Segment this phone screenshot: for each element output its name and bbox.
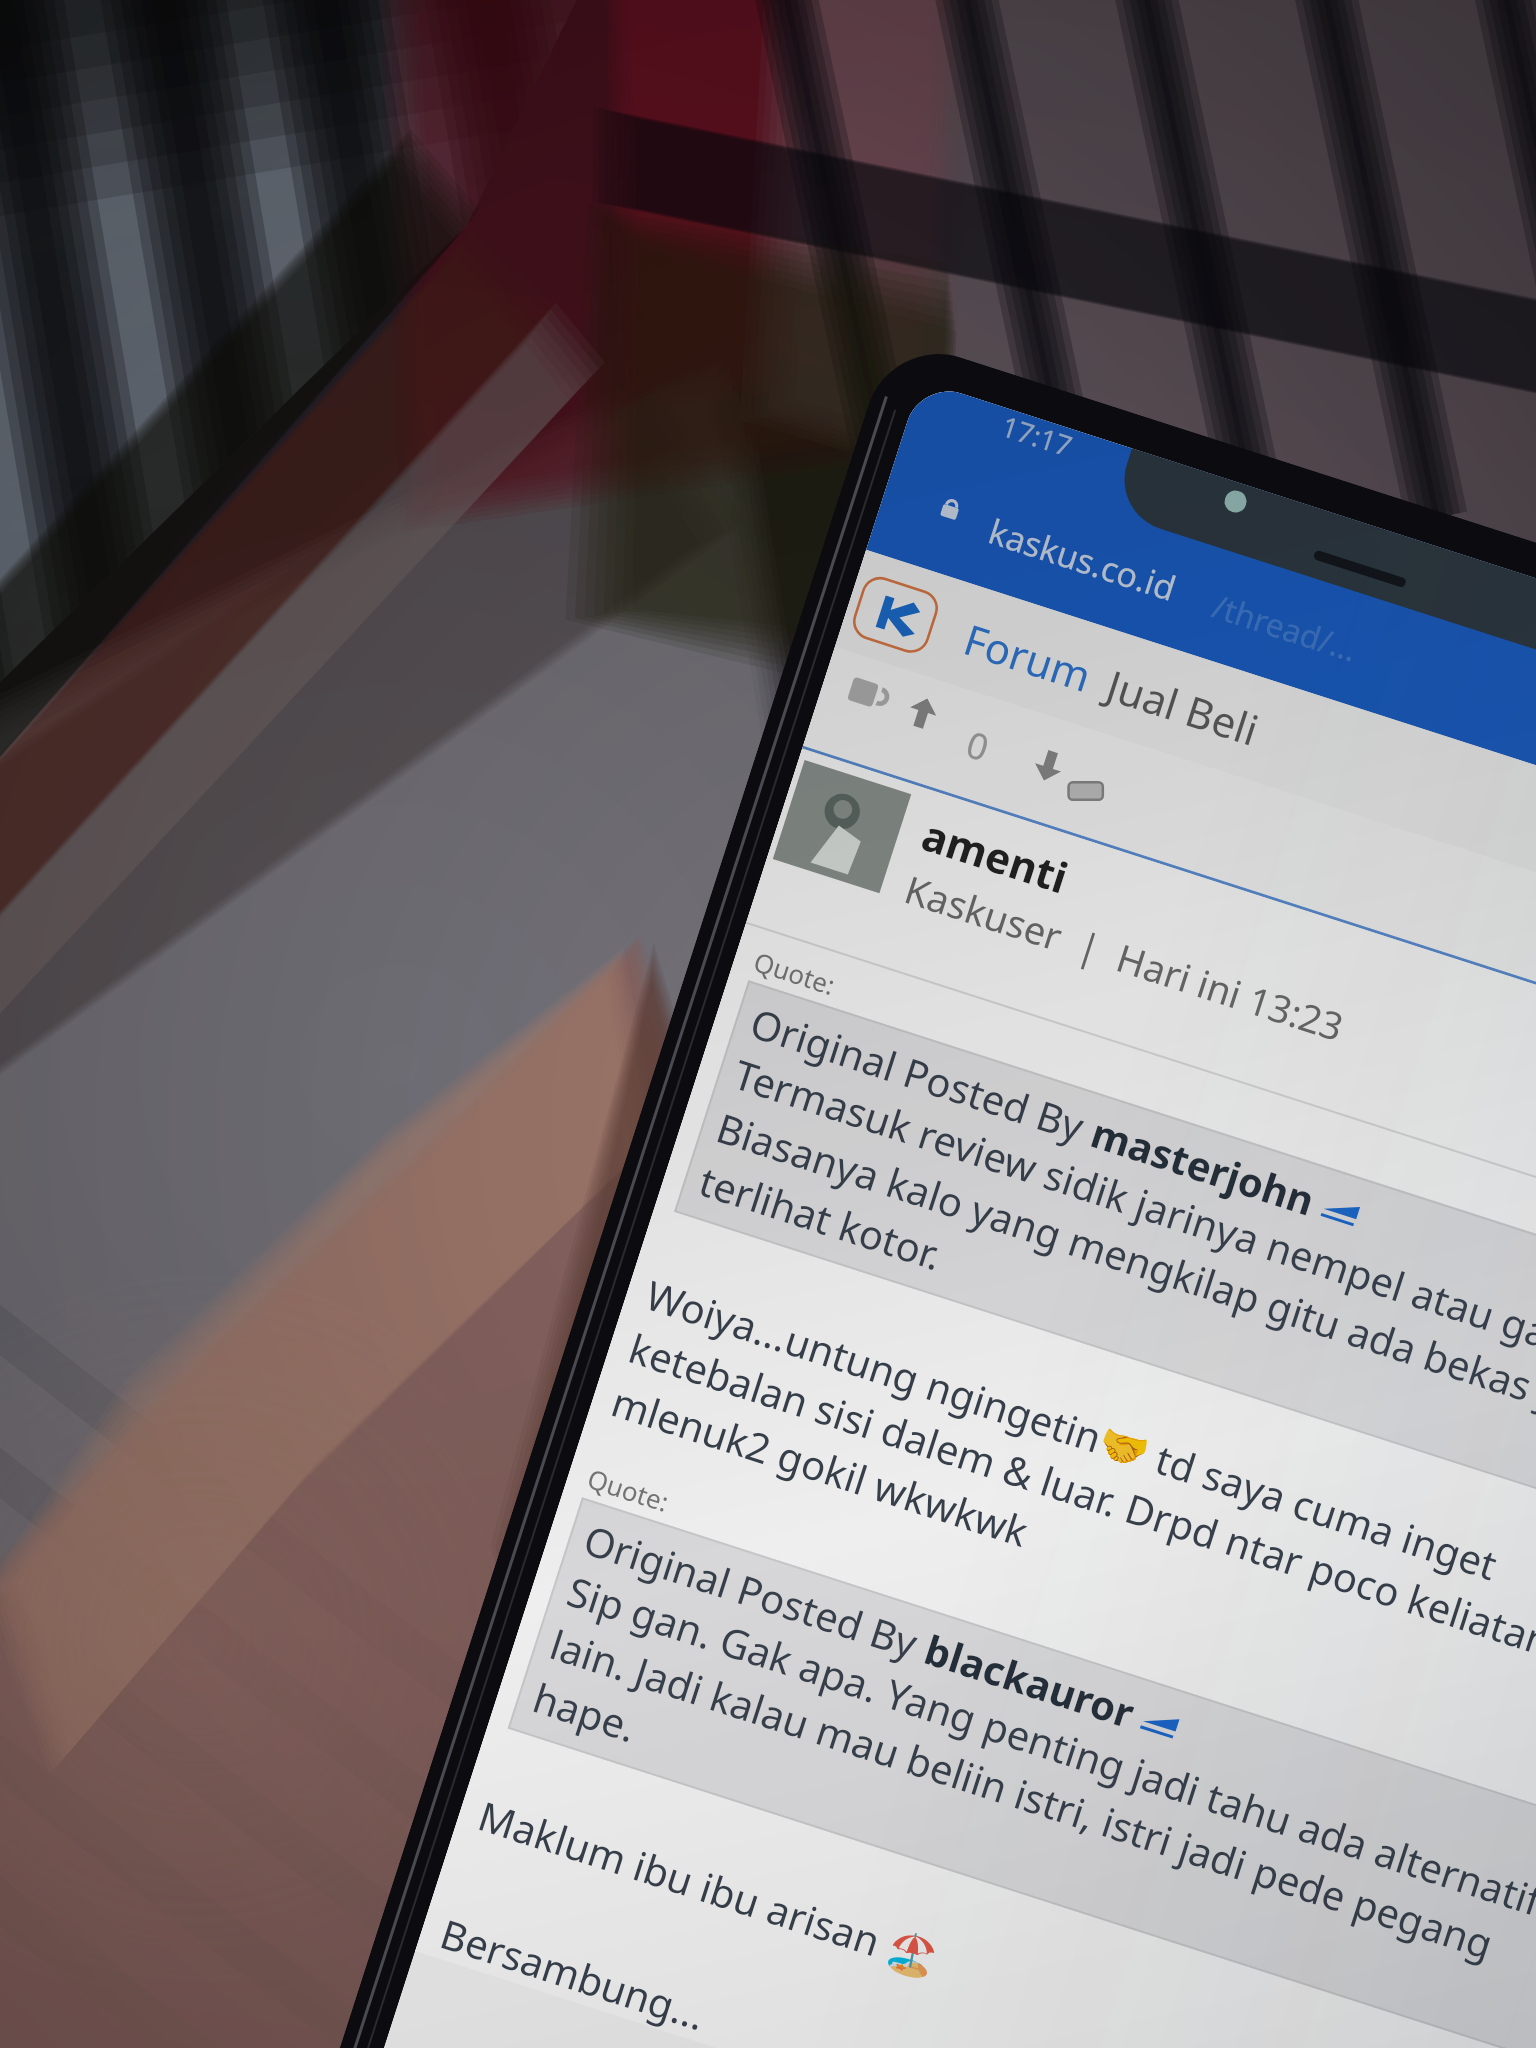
staticText: Termasuk review sidik jarinya nempel ata… [693,1046,1536,1529]
staticText: Sip gan. Gak apa. Yang penting jadi tahu… [526,1563,1536,2046]
staticText: Original Posted By [744,995,1101,1156]
button[interactable]: Forum [941,589,1115,724]
staticText: blackauror [918,1621,1142,1739]
staticText: Maklum ibu ibu arisan 🏖 [472,1788,945,1986]
staticText: Jual Beli [1100,656,1266,758]
staticText: amenti [915,805,1076,906]
staticText: Kaskuser | Hari ini 13:23 [899,863,1350,1052]
staticText: masterjohn [1085,1104,1322,1227]
button[interactable]: amenti avatar [746,749,1536,1265]
button[interactable]: Jual Beli [1083,635,1283,778]
staticText: 0 [960,719,995,772]
button[interactable]: Downvote [1026,743,1071,789]
button[interactable]: Original Posted By [508,1497,1536,2048]
button[interactable]: Cendol [840,664,900,724]
button[interactable]: Upvote [900,690,945,736]
staticText: Bersambung... [434,1906,712,2041]
staticText: kaskus.co.id [983,508,1182,611]
button[interactable]: Original Posted By [674,980,1536,1544]
staticText: Quote: [583,1460,674,1519]
staticText: Quote: [750,943,840,1002]
staticText: /thread/... [1207,584,1363,672]
button[interactable]: amenti avatar [773,760,911,893]
staticText: Original Posted By [578,1512,935,1673]
staticText: Woiya...untung ngingetin🤝 td saya cuma i… [605,1267,1536,1758]
staticText: 17:17 [997,408,1077,465]
button[interactable]: Kaskus home [850,574,941,656]
staticText: Forum [957,610,1099,704]
button[interactable]: Share [1058,765,1114,820]
